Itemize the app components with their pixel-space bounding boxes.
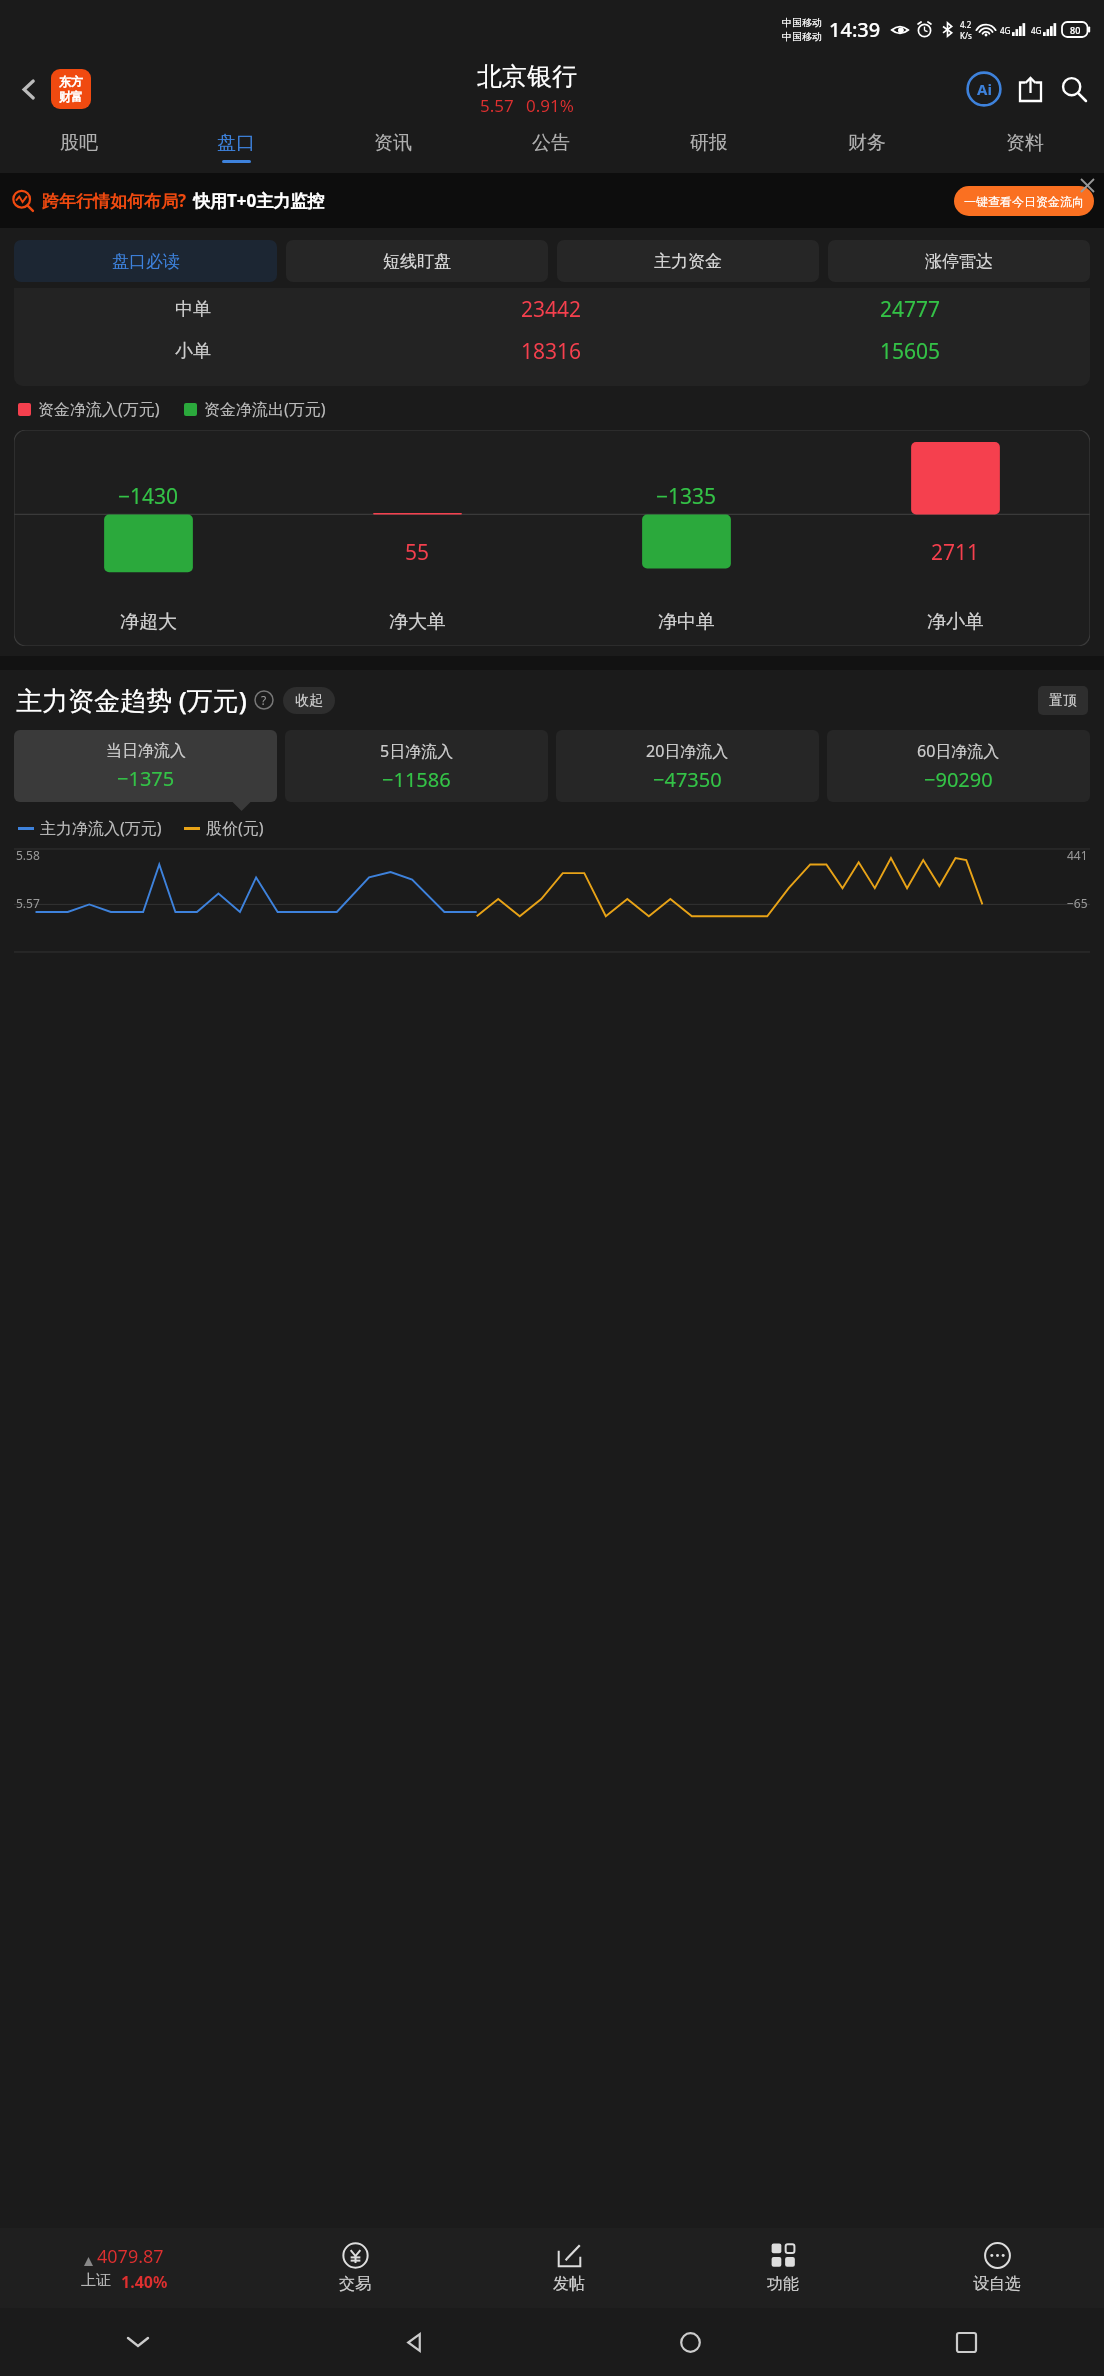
- button[interactable]: 5日净流入: [285, 730, 548, 802]
- staticText: 股吧: [60, 131, 98, 155]
- staticText: 发帖: [553, 2274, 585, 2294]
- staticText: 资金净流入(万元): [38, 398, 160, 420]
- button[interactable]: Home: [552, 2308, 828, 2376]
- staticText: 4G: [1031, 25, 1042, 36]
- button[interactable]: 收起: [283, 687, 335, 714]
- staticText: 5.58: [16, 847, 40, 863]
- staticText: 80: [1070, 24, 1081, 36]
- staticText: 设自选: [973, 2274, 1021, 2294]
- staticText: −11586: [382, 766, 451, 793]
- button[interactable]: 财务: [788, 120, 946, 173]
- button[interactable]: Back: [10, 70, 48, 108]
- staticText: 18316: [521, 337, 582, 366]
- staticText: 20日净流入: [646, 740, 729, 762]
- button[interactable]: Hide keyboard: [0, 2308, 276, 2376]
- staticText: 4079.87: [97, 2244, 164, 2269]
- staticText: −1430: [118, 482, 179, 511]
- button[interactable]: 发帖: [462, 2228, 676, 2308]
- staticText: −65: [1067, 895, 1088, 911]
- staticText: 一键查看今日资金流向: [964, 194, 1084, 209]
- staticText: 快用T+0主力监控: [193, 189, 325, 212]
- staticText: 东方: [59, 74, 83, 89]
- staticText: 4G: [1000, 25, 1011, 36]
- button[interactable]: 20日净流入: [556, 730, 819, 802]
- button[interactable]: 研报: [630, 120, 788, 173]
- button[interactable]: 资料: [946, 120, 1104, 173]
- staticText: −90290: [924, 766, 993, 793]
- button[interactable]: Help: [254, 690, 274, 710]
- staticText: 15605: [880, 337, 941, 366]
- staticText: −1375: [117, 765, 175, 792]
- button[interactable]: 主力资金: [557, 240, 819, 282]
- staticText: ?: [261, 692, 267, 708]
- button[interactable]: Back: [276, 2308, 552, 2376]
- staticText: 资金净流出(万元): [204, 398, 326, 420]
- button[interactable]: 60日净流入: [827, 730, 1090, 802]
- button[interactable]: 一键查看今日资金流向: [954, 186, 1094, 216]
- button[interactable]: Close: [1076, 174, 1098, 196]
- button[interactable]: 短线盯盘: [286, 240, 548, 282]
- staticText: 置顶: [1049, 692, 1077, 710]
- staticText: 中国移动: [782, 30, 822, 43]
- staticText: 资料: [1006, 131, 1044, 155]
- staticText: 净超大: [120, 610, 177, 634]
- staticText: 24777: [880, 295, 941, 324]
- staticText: 盘口必读: [112, 251, 180, 272]
- staticText: K/s: [960, 30, 972, 41]
- staticText: 5日净流入: [380, 740, 454, 762]
- button[interactable]: 设自选: [890, 2228, 1104, 2308]
- staticText: 上证: [81, 2271, 111, 2290]
- staticText: 主力资金: [654, 251, 722, 272]
- staticText: 小单: [175, 340, 211, 363]
- staticText: 财富: [59, 89, 83, 104]
- staticText: 净中单: [658, 610, 715, 634]
- staticText: 55: [405, 538, 430, 567]
- staticText: Ai: [977, 79, 992, 99]
- button[interactable]: 盘口: [157, 120, 314, 173]
- staticText: 23442: [521, 295, 582, 324]
- button[interactable]: Recents: [828, 2308, 1104, 2376]
- staticText: 441: [1067, 847, 1088, 863]
- button[interactable]: 涨停雷达: [828, 240, 1090, 282]
- staticText: 短线盯盘: [383, 251, 451, 272]
- staticText: 2711: [931, 538, 980, 567]
- staticText: 60日净流入: [917, 740, 1000, 762]
- button[interactable]: AI: [964, 69, 1004, 109]
- staticText: 跨年行情如何布局?: [42, 189, 187, 212]
- staticText: 资讯: [374, 131, 412, 155]
- staticText: 盘口: [217, 131, 255, 155]
- button[interactable]: 功能: [676, 2228, 890, 2308]
- staticText: 中单: [175, 298, 211, 321]
- staticText: 净小单: [927, 610, 984, 634]
- button[interactable]: Search: [1054, 69, 1094, 109]
- button[interactable]: 盘口必读: [14, 240, 277, 282]
- staticText: 涨停雷达: [925, 251, 993, 272]
- staticText: 当日净流入: [106, 741, 186, 761]
- staticText: 研报: [690, 131, 728, 155]
- staticText: −1335: [656, 482, 717, 511]
- staticText: 收起: [295, 692, 323, 710]
- staticText: 0.91%: [526, 94, 574, 117]
- button[interactable]: 交易: [248, 2228, 462, 2308]
- button[interactable]: 置顶: [1038, 686, 1088, 715]
- staticText: 股价(元): [206, 817, 264, 839]
- staticText: 5.57: [480, 94, 514, 117]
- button[interactable]: East Money: [51, 69, 91, 109]
- button[interactable]: 股吧: [0, 120, 157, 173]
- staticText: 净大单: [389, 610, 446, 634]
- staticText: 财务: [848, 131, 886, 155]
- staticText: 1.40%: [121, 2271, 168, 2293]
- staticText: 4.2: [960, 19, 972, 30]
- staticText: 中国移动: [782, 16, 822, 29]
- staticText: 功能: [767, 2274, 799, 2294]
- button[interactable]: 4079.87: [0, 2228, 248, 2308]
- staticText: 5.57: [16, 895, 40, 911]
- button[interactable]: 当日净流入: [14, 730, 277, 802]
- staticText: 交易: [339, 2274, 371, 2294]
- staticText: 14:39: [829, 16, 881, 43]
- staticText: −47350: [653, 766, 722, 793]
- button[interactable]: 资讯: [314, 120, 472, 173]
- button[interactable]: 公告: [472, 120, 630, 173]
- button[interactable]: Share: [1010, 69, 1050, 109]
- staticText: 公告: [532, 131, 570, 155]
